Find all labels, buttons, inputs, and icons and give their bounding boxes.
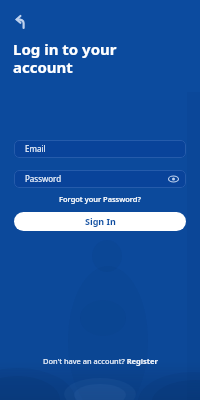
button[interactable]: Don't have an account? Register <box>43 356 158 366</box>
button[interactable]: Forgot your Password? <box>59 194 141 204</box>
staticText: Log in to your account <box>13 39 117 78</box>
staticText: Email <box>25 143 46 154</box>
staticText: Sign In <box>85 215 116 227</box>
button[interactable] <box>8 8 32 32</box>
button[interactable] <box>168 175 179 183</box>
staticText: Password <box>25 173 62 184</box>
button[interactable]: Password <box>14 170 186 188</box>
button[interactable]: Email <box>14 140 186 158</box>
button[interactable]: Sign In <box>14 212 186 231</box>
